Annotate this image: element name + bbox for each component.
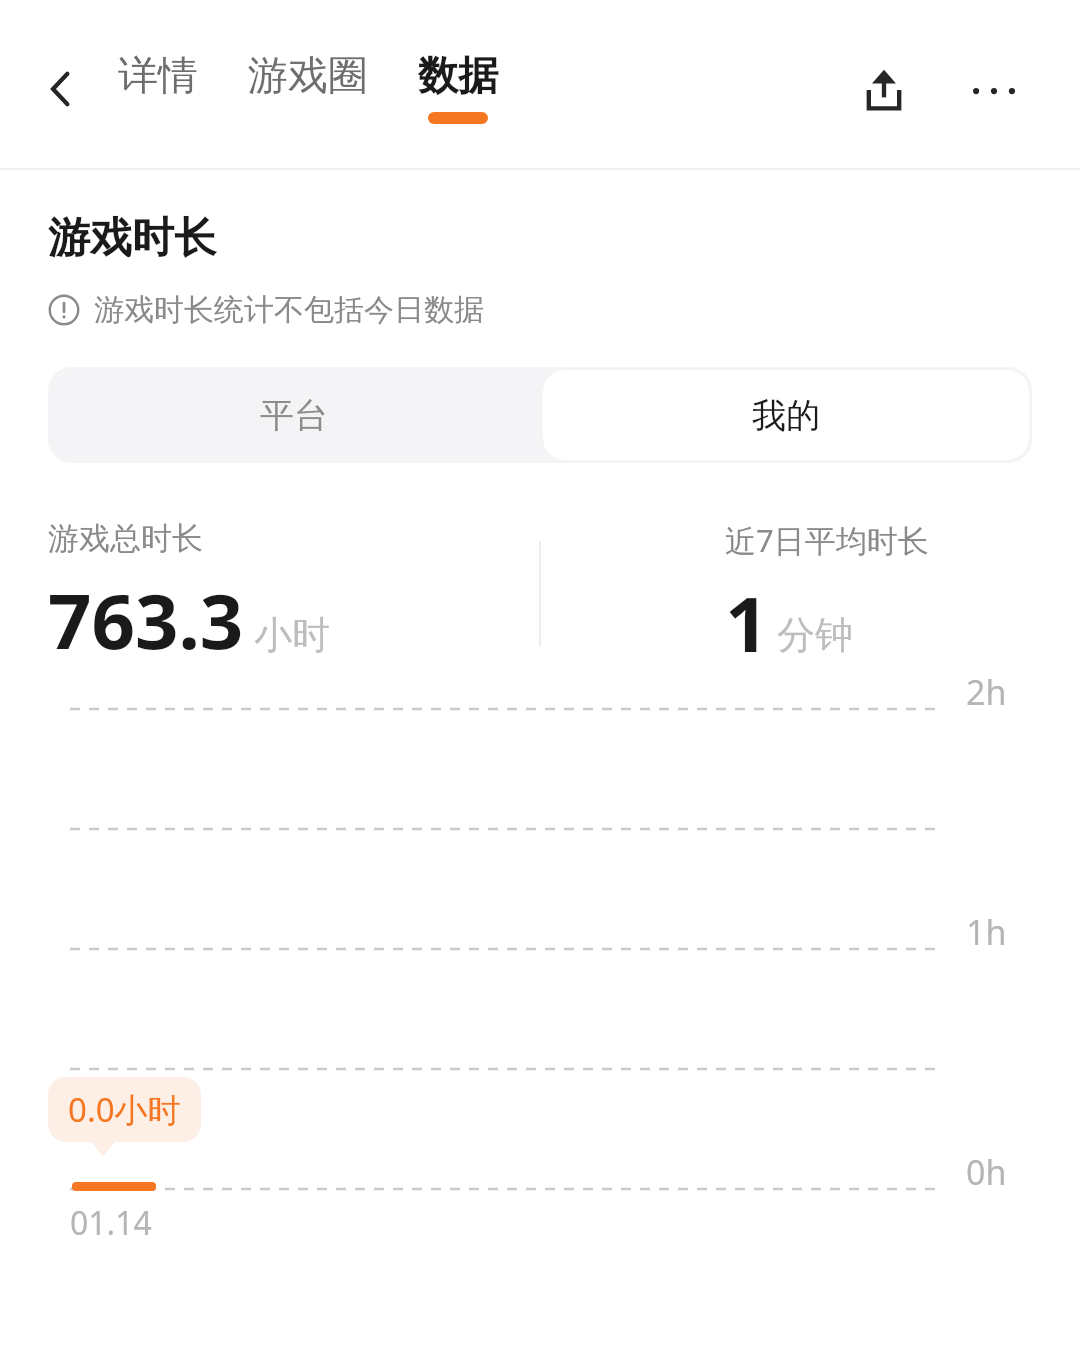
button[interactable]: More options: [956, 52, 1032, 128]
button[interactable]: 游戏圈: [238, 46, 378, 128]
staticText: 1: [725, 571, 769, 669]
button[interactable]: 0.0小时: [48, 1077, 201, 1142]
staticText: 游戏圈: [248, 50, 368, 100]
button[interactable]: 详情: [108, 46, 208, 128]
button[interactable]: Share: [846, 52, 922, 128]
staticText: 763.3: [48, 568, 244, 669]
staticText: 0.0小时: [68, 1087, 181, 1132]
button[interactable]: Back: [28, 56, 94, 122]
staticText: 详情: [118, 50, 198, 100]
staticText: 近7日平均时长: [725, 519, 929, 561]
button[interactable]: 平台: [48, 367, 540, 463]
staticText: 我的: [752, 394, 820, 437]
staticText: 平台: [260, 394, 328, 437]
staticText: 小时: [254, 611, 330, 659]
staticText: 分钟: [777, 611, 853, 659]
staticText: 数据: [418, 50, 498, 100]
staticText: 游戏时长: [48, 212, 216, 265]
staticText: 0h: [966, 1149, 1007, 1195]
staticText: 2h: [966, 669, 1007, 715]
staticText: 1h: [966, 909, 1007, 955]
staticText: 游戏总时长: [48, 519, 203, 558]
button[interactable]: 数据: [408, 46, 508, 128]
staticText: 01.14: [70, 1201, 152, 1245]
button[interactable]: 我的: [543, 370, 1029, 460]
staticText: 游戏时长统计不包括今日数据: [94, 291, 484, 329]
